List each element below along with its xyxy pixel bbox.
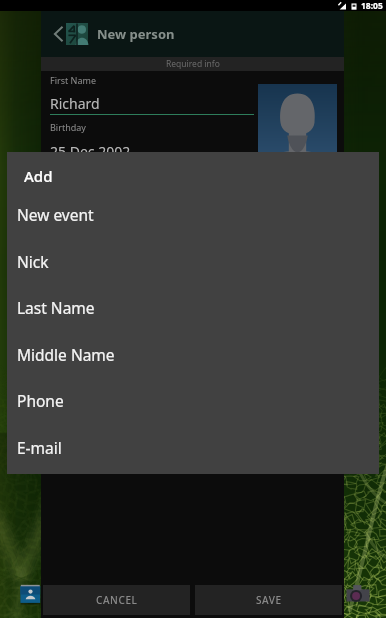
button[interactable]: Middle Name [7, 331, 379, 378]
button[interactable]: Phone [7, 377, 379, 424]
staticText: New person [97, 25, 175, 43]
button[interactable]: Photo [258, 84, 337, 170]
staticText: Nick [17, 251, 49, 272]
staticText: First Name [50, 74, 96, 86]
staticText: Add [24, 166, 53, 186]
staticText: New event [17, 204, 94, 225]
button[interactable]: CANCEL [43, 585, 190, 615]
staticText: Last Name [17, 297, 95, 318]
button[interactable]: Last Name [7, 284, 379, 331]
staticText: Richard [50, 94, 100, 113]
staticText: 25 Dec 2002 [50, 142, 131, 161]
staticText: 18:05 [361, 0, 383, 11]
other: Back [54, 26, 63, 42]
button[interactable]: SAVE [195, 585, 342, 615]
staticText: Birthday [50, 121, 86, 133]
button[interactable]: Camera [346, 583, 370, 604]
staticText: SAVE [256, 593, 282, 607]
button[interactable]: New event [7, 191, 379, 238]
button[interactable]: Contacts [20, 584, 41, 605]
staticText: CANCEL [96, 593, 138, 607]
staticText: E-mail [17, 437, 62, 458]
button[interactable]: Nick [7, 238, 379, 285]
staticText: Phone [17, 390, 64, 411]
button[interactable]: New person [41, 11, 344, 57]
staticText: Required info [166, 58, 220, 70]
staticText: Middle Name [17, 344, 115, 365]
button[interactable]: E-mail [7, 424, 379, 471]
